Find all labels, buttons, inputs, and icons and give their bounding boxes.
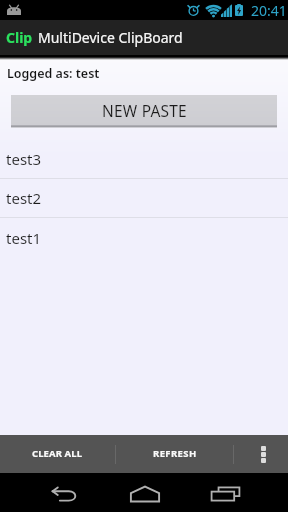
staticText: test1 — [6, 228, 42, 248]
button[interactable]: NEW PASTE — [11, 95, 277, 126]
button[interactable]: test1 — [0, 218, 288, 257]
button[interactable]: test2 — [0, 179, 288, 218]
button[interactable]: More options — [234, 435, 288, 473]
staticText: NEW PASTE — [102, 100, 187, 121]
button[interactable]: Back — [0, 473, 96, 512]
button[interactable]: Home — [96, 473, 192, 512]
staticText: Clip — [6, 28, 33, 47]
button[interactable]: REFRESH — [116, 435, 233, 473]
staticText: MultiDevice ClipBoard — [38, 28, 183, 47]
staticText: REFRESH — [153, 447, 197, 460]
staticText: Logged as: test — [7, 65, 100, 82]
button[interactable]: Recents — [192, 473, 288, 512]
staticText: test3 — [6, 149, 42, 169]
staticText: CLEAR ALL — [32, 447, 83, 460]
staticText: test2 — [6, 188, 42, 208]
staticText: 20:41 — [251, 1, 287, 20]
button[interactable]: CLEAR ALL — [0, 435, 115, 473]
button[interactable]: test3 — [0, 140, 288, 179]
